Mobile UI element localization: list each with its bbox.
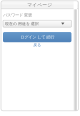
- button[interactable]: 戻る: [33, 43, 41, 47]
- staticText: 戻る: [33, 43, 41, 47]
- staticText: ログイン して 続行: [20, 34, 54, 40]
- staticText: 現在の 用途を 選択: [5, 21, 39, 26]
- button[interactable]: 現在の 用途を 選択: [3, 20, 71, 27]
- staticText: パスワード 変更: [3, 12, 32, 18]
- button[interactable]: ログイン して 続行: [3, 32, 71, 42]
- staticText: マイページ: [27, 2, 52, 8]
